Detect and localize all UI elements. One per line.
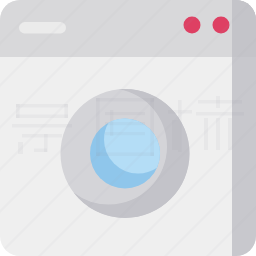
- button[interactable]: Washing machine illustration: [0, 0, 256, 256]
